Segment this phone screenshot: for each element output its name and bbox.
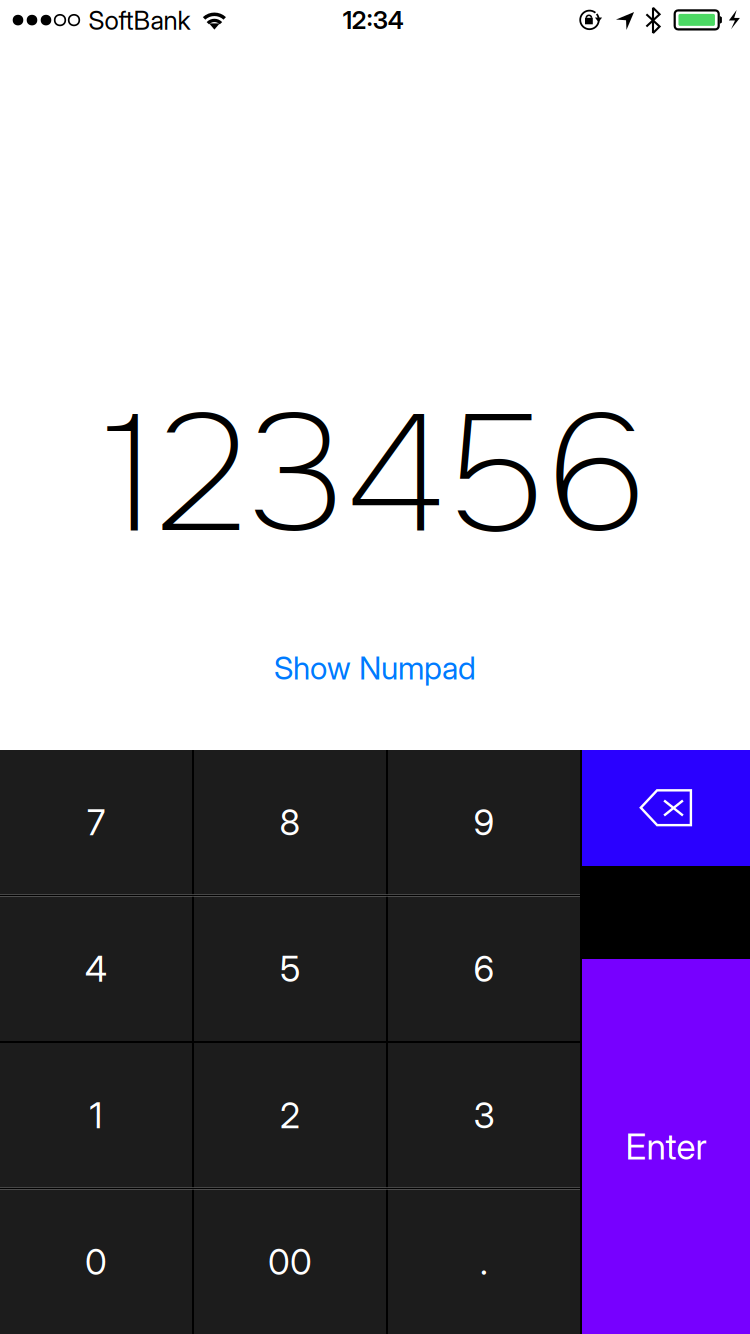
staticText: 7 [87,801,105,844]
staticText: SoftBank [88,5,190,36]
staticText: Show Numpad [274,649,476,687]
button[interactable]: 9 [388,750,580,894]
button[interactable]: 8 [194,750,386,894]
staticText: 6 [473,947,494,990]
button[interactable]: 0 [0,1189,192,1334]
staticText: 00 [268,1240,312,1283]
button[interactable]: 2 [194,1043,386,1187]
staticText: 0 [85,1240,107,1283]
staticText: 4 [85,947,107,990]
staticText: 5 [280,947,300,990]
button[interactable]: 1 [0,1043,192,1187]
staticText: 12:34 [343,5,404,35]
button[interactable]: Delete [582,750,750,866]
staticText: 3 [473,1094,494,1137]
button[interactable]: 4 [0,896,192,1041]
staticText: 123456 [102,371,647,580]
staticText: . [480,1240,488,1283]
button[interactable]: 6 [388,896,580,1041]
button[interactable]: Enter [582,959,750,1334]
button[interactable]: Show Numpad [274,649,476,687]
staticText: 2 [280,1094,300,1137]
staticText: 9 [473,801,494,844]
staticText: 1 [89,1094,102,1137]
button[interactable]: 3 [388,1043,580,1187]
button[interactable]: 5 [194,896,386,1041]
button[interactable]: . [388,1189,580,1334]
staticText: Enter [625,1125,706,1168]
button[interactable]: 00 [194,1189,386,1334]
staticText: 8 [279,801,300,844]
button[interactable]: 7 [0,750,192,894]
